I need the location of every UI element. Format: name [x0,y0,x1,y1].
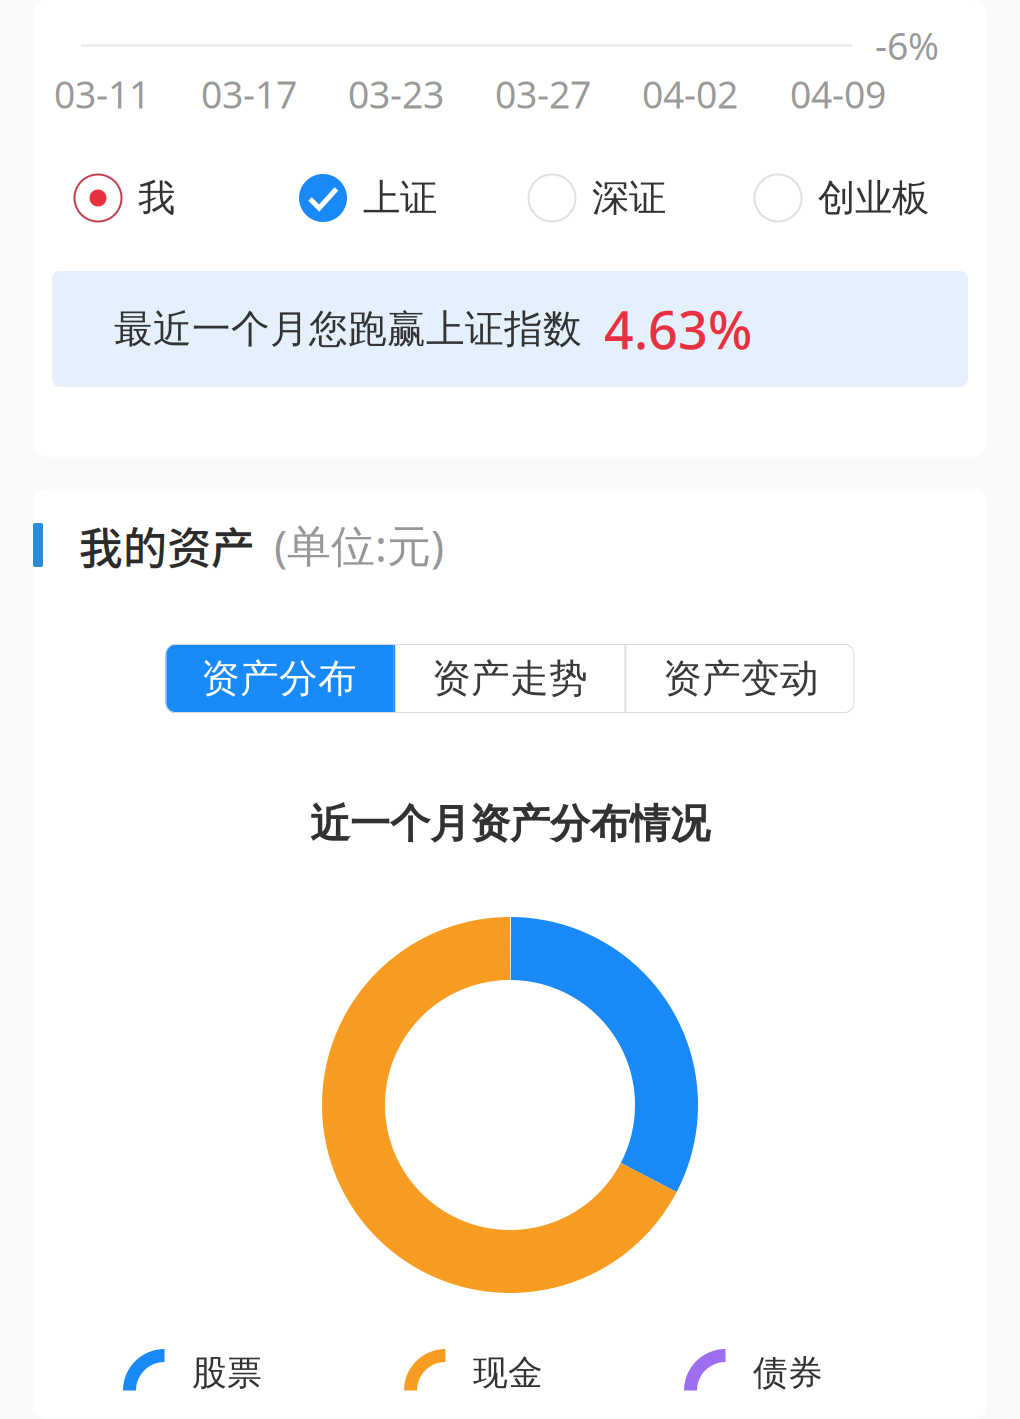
staticText: 我的资产 [79,513,255,577]
button[interactable]: 资产走势 [395,644,624,713]
staticText: 债券 [753,1352,823,1394]
staticText: 04-02 [642,69,738,119]
staticText: 03-11 [54,69,150,119]
button[interactable]: 创业板 [754,174,929,222]
staticText: 03-17 [201,69,297,119]
staticText: 创业板 [818,175,929,221]
staticText: 资产走势 [432,655,588,702]
button[interactable]: 资产分布 [164,644,393,713]
staticText: 股票 [192,1352,262,1394]
button[interactable]: 深证 [528,174,666,222]
staticText: 4.63% [604,294,752,364]
staticText: -6% [875,21,939,70]
button[interactable]: 资产变动 [626,644,855,713]
staticText: 最近一个月您跑赢上证指数 [114,305,582,353]
staticText: 资产变动 [663,655,819,702]
staticText: 现金 [473,1352,543,1394]
staticText: 深证 [592,175,666,221]
staticText: 03-27 [495,69,591,119]
staticText: (单位:元) [274,516,444,574]
button[interactable]: 我 [74,174,175,222]
staticText: 上证 [363,175,437,221]
staticText: 近一个月资产分布情况 [310,799,710,848]
staticText: 我 [138,175,175,221]
button[interactable]: 上证 [299,174,437,222]
staticText: 04-09 [790,69,886,119]
staticText: 资产分布 [201,655,357,702]
staticText: 03-23 [348,69,444,119]
